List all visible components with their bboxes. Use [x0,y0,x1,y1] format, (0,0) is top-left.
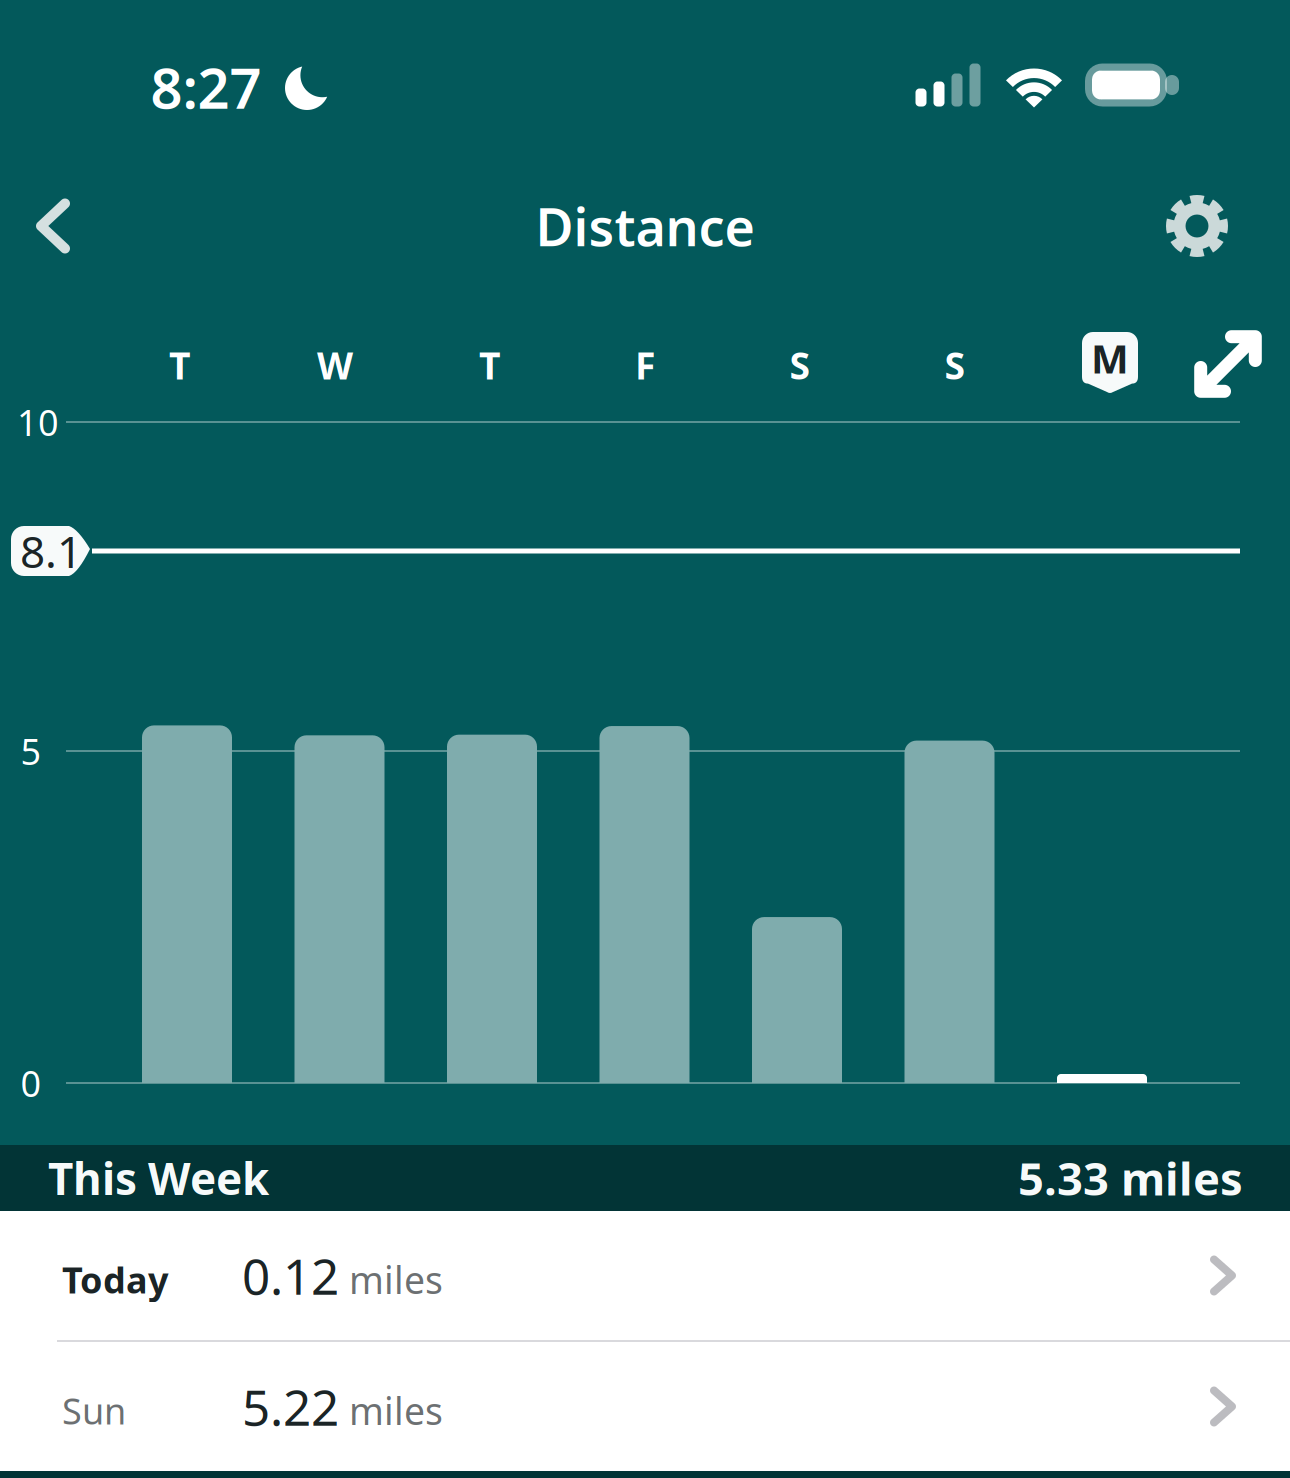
button[interactable]: Sun [0,1342,1290,1471]
staticText: W [317,340,353,390]
staticText: 0.12 [242,1243,339,1308]
staticText: 5.33 miles [1018,1148,1243,1208]
staticText: miles [349,1255,443,1304]
staticText: S [789,340,810,390]
staticText: 8.1 [20,522,82,580]
button[interactable]: Expand chart [1177,313,1279,415]
button[interactable]: Today [0,1211,1290,1340]
staticText: S [944,340,965,390]
staticText: Sun [62,1387,126,1434]
button[interactable]: Settings [1142,171,1252,281]
staticText: This Week [48,1149,269,1207]
staticText: Distance [535,191,754,261]
staticText: miles [349,1386,443,1435]
staticText: F [635,340,655,390]
button[interactable]: Back [2,175,112,276]
staticText: T [169,340,191,390]
staticText: M [1091,331,1129,384]
staticText: T [479,340,501,390]
staticText: 5.22 [242,1374,339,1439]
staticText: 8:27 [150,50,261,124]
staticText: Today [62,1256,169,1303]
staticText: 5 [20,727,41,775]
staticText: 10 [17,398,59,446]
staticText: 0 [20,1059,41,1107]
